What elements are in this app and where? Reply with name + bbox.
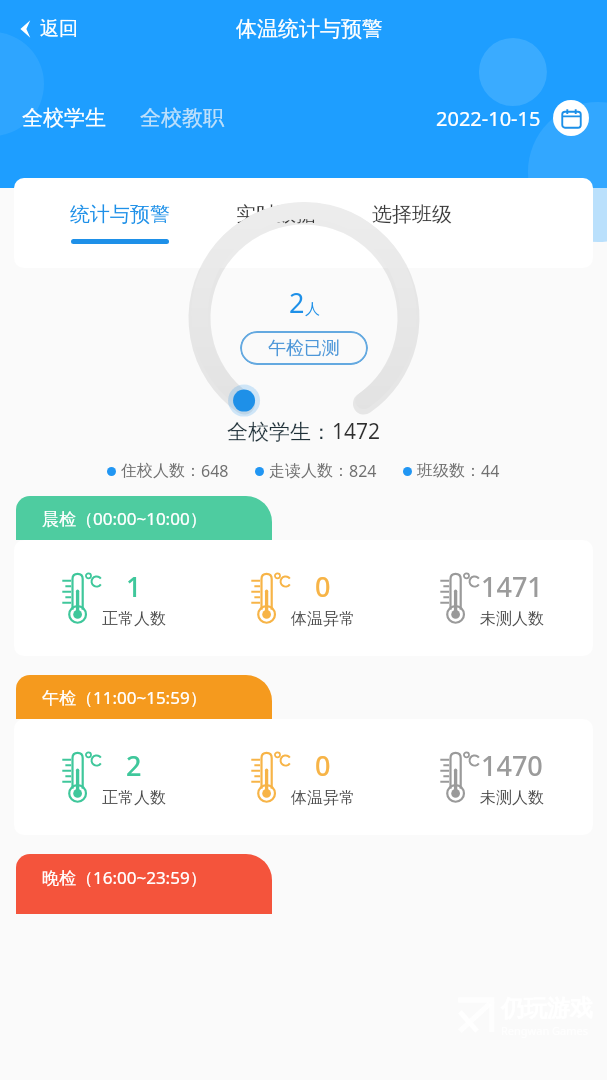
staticText: 住校人数： [121, 461, 201, 481]
button[interactable]: 午检已测 [240, 331, 368, 365]
button[interactable]: 2 [14, 719, 593, 835]
staticText: 午检已测 [268, 337, 340, 360]
button[interactable]: 统计与预警 [68, 202, 172, 244]
staticText: 648 [201, 460, 229, 482]
staticText: 体温异常 [291, 609, 355, 629]
staticText: 午检（11:00~15:59） [42, 686, 207, 709]
button[interactable]: 实时数据 [234, 202, 318, 239]
staticText: 晚检（16:00~23:59） [42, 866, 207, 889]
button[interactable]: 返回 [14, 13, 82, 45]
staticText: 晨检（00:00~10:00） [42, 507, 207, 530]
staticText: 正常人数 [102, 609, 166, 629]
staticText: 全校学生： [227, 419, 332, 445]
button[interactable]: Pick date [553, 100, 589, 136]
staticText: 未测人数 [480, 609, 544, 629]
staticText: 返回 [40, 17, 78, 41]
staticText: 824 [349, 460, 377, 482]
staticText: 1472 [332, 417, 381, 446]
staticText: 统计与预警 [70, 202, 170, 227]
button[interactable]: 2022-10-15 [432, 101, 545, 136]
staticText: 44 [481, 460, 500, 482]
staticText: 1 [126, 568, 142, 605]
button[interactable]: 全校教职 [136, 101, 228, 135]
button[interactable]: 选择班级 [370, 202, 454, 239]
staticText: 2 [126, 747, 142, 784]
staticText: 走读人数： [269, 461, 349, 481]
staticText: 0 [315, 568, 331, 605]
button[interactable]: 晚检（16:00~23:59） [16, 854, 272, 914]
staticText: 实时数据 [236, 202, 316, 227]
button[interactable]: 午检（11:00~15:59） [16, 675, 272, 719]
staticText: 0 [315, 747, 331, 784]
staticText: 正常人数 [102, 788, 166, 808]
staticText: 选择班级 [372, 202, 452, 227]
staticText: 体温统计与预警 [236, 16, 383, 42]
staticText: 班级数： [417, 461, 481, 481]
staticText: 1471 [481, 568, 543, 605]
staticText: 未测人数 [480, 788, 544, 808]
button[interactable]: 全校学生 [18, 101, 110, 135]
button[interactable]: 晨检（00:00~10:00） [16, 496, 272, 540]
staticText: 2 [289, 284, 305, 321]
button[interactable]: 1 [14, 540, 593, 656]
staticText: 1470 [481, 747, 543, 784]
staticText: 人 [305, 300, 320, 319]
staticText: 体温异常 [291, 788, 355, 808]
